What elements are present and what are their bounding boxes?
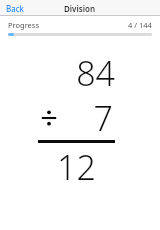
staticText: 12: [57, 144, 96, 190]
staticText: 7: [93, 95, 113, 140]
staticText: Division: [64, 3, 96, 14]
staticText: 84: [76, 50, 115, 95]
staticText: Back: [6, 3, 24, 14]
staticText: 4 / 144: [128, 20, 152, 30]
staticText: Progress: [8, 20, 39, 30]
button[interactable]: Progress: [0, 16, 160, 33]
button[interactable]: Back: [6, 0, 24, 16]
